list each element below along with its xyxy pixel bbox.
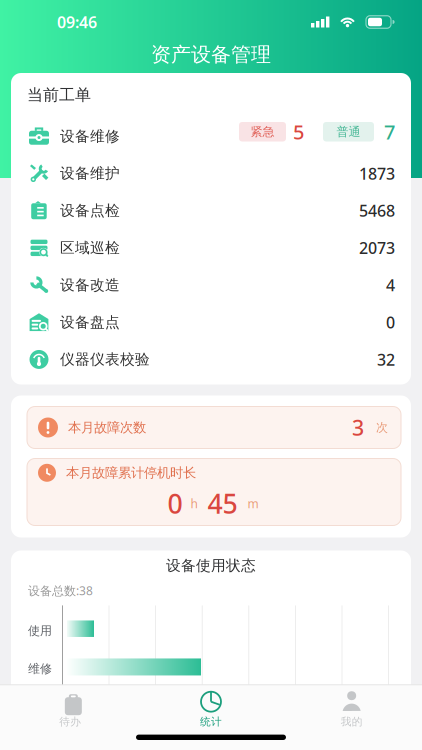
staticText: 0 <box>167 486 182 521</box>
button[interactable]: 设备改造 <box>11 266 411 304</box>
staticText: 资产设备管理 <box>151 42 271 67</box>
staticText: 次 <box>376 420 388 435</box>
staticText: 32 <box>377 349 395 370</box>
staticText: h <box>190 495 197 511</box>
staticText: 2073 <box>359 237 395 258</box>
button[interactable]: 本月故障累计停机时长 <box>27 458 401 525</box>
staticText: 普通 <box>336 124 360 139</box>
staticText: 使用 <box>28 623 52 638</box>
staticText: 0 <box>386 312 395 333</box>
staticText: 待办 <box>59 715 81 728</box>
staticText: 仪器仪表校验 <box>60 350 150 368</box>
button[interactable]: 统计 <box>141 690 281 728</box>
staticText: 当前工单 <box>27 85 91 105</box>
staticText: 1873 <box>359 163 395 184</box>
button[interactable]: 设备盘点 <box>11 304 411 341</box>
staticText: 3 <box>352 413 364 442</box>
button[interactable]: 区域巡检 <box>11 229 411 266</box>
staticText: 我的 <box>341 715 363 728</box>
button[interactable]: 仪器仪表校验 <box>11 341 411 378</box>
button[interactable]: 设备维护 <box>11 155 411 192</box>
staticText: 设备维修 <box>60 127 120 145</box>
button[interactable]: 设备点检 <box>11 192 411 229</box>
staticText: 维修 <box>28 661 52 676</box>
staticText: 本月故障次数 <box>68 419 146 436</box>
staticText: 设备改造 <box>60 276 120 294</box>
staticText: m <box>247 495 258 511</box>
staticText: 紧急 <box>250 124 274 139</box>
staticText: 设备点检 <box>60 202 120 220</box>
staticText: 设备维护 <box>60 164 120 182</box>
staticText: 7 <box>384 118 395 145</box>
staticText: 09:46 <box>57 11 97 33</box>
staticText: 设备总数:38 <box>28 582 93 598</box>
staticText: 本月故障累计停机时长 <box>66 465 196 481</box>
staticText: 45 <box>207 486 237 521</box>
staticText: 区域巡检 <box>60 239 120 257</box>
button[interactable]: 本月故障次数 <box>27 406 401 448</box>
staticText: 统计 <box>200 715 222 728</box>
staticText: 设备盘点 <box>60 313 120 331</box>
staticText: 5468 <box>359 200 395 221</box>
button[interactable]: 设备维修 <box>11 118 411 155</box>
button[interactable]: 待办 <box>0 690 141 728</box>
staticText: 4 <box>386 274 395 296</box>
staticText: 设备使用状态 <box>166 556 256 574</box>
staticText: 5 <box>293 118 304 145</box>
button[interactable]: 我的 <box>281 690 422 728</box>
